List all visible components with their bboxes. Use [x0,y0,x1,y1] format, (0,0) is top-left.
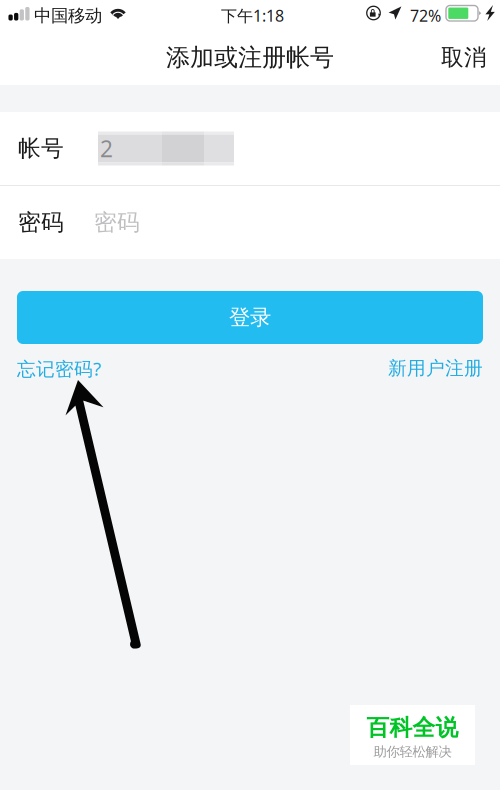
button[interactable]: 忘记密码? [17,356,101,381]
staticText: 添加或注册帐号 [166,43,334,72]
staticText: 助你轻松解决 [373,744,451,760]
button[interactable]: 登录 [17,291,483,344]
staticText: 2 [100,133,113,163]
staticText: 取消 [441,44,487,71]
staticText: 登录 [229,304,271,331]
staticText: 下午1:18 [221,5,284,26]
button[interactable]: 新用户注册 [388,357,483,380]
staticText: 密码 [18,209,64,236]
staticText: 密码 [94,209,140,236]
staticText: 帐号 [18,135,64,162]
button[interactable]: 密码 [0,186,500,259]
button[interactable]: 帐号 [0,112,500,185]
staticText: 忘记密码? [17,356,101,381]
staticText: 新用户注册 [388,357,483,380]
staticText: 72% [410,5,441,26]
staticText: 中国移动 [34,5,102,26]
staticText: 百科全说 [366,714,458,742]
button[interactable]: 取消 [428,34,500,81]
